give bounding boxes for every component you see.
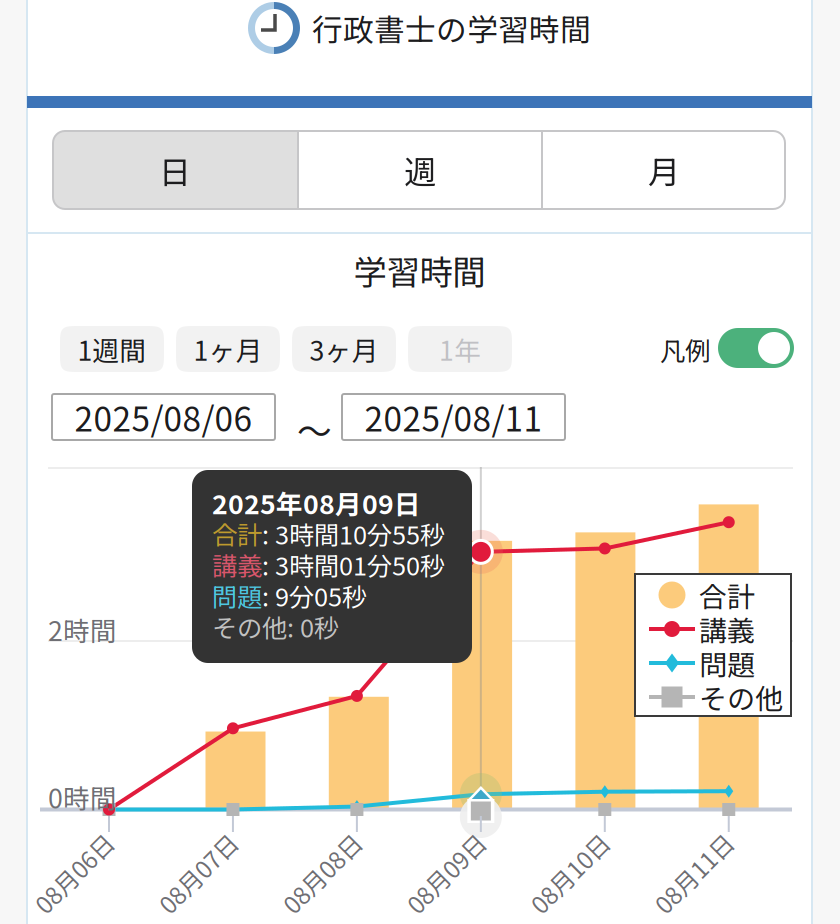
button[interactable]: 1年: [408, 326, 512, 372]
staticText: その他: 0秒: [212, 608, 339, 645]
staticText: 08月09日: [396, 856, 496, 890]
button[interactable]: 凡例の表示切り替え: [718, 328, 794, 368]
staticText: : 9分05秒: [262, 577, 367, 614]
staticText: 合計: [212, 515, 262, 552]
staticText: 行政書士の学習時間: [312, 6, 591, 50]
staticText: 学習時間: [353, 246, 485, 294]
staticText: 2025/08/11: [364, 393, 542, 441]
staticText: 〜: [297, 404, 332, 454]
staticText: 1年: [439, 330, 481, 368]
staticText: その他: [699, 677, 783, 717]
staticText: 合計: [699, 575, 755, 615]
button[interactable]: 1週間: [60, 326, 164, 372]
button[interactable]: 日: [53, 131, 297, 209]
staticText: 08月10日: [520, 856, 620, 890]
button[interactable]: 月: [543, 131, 785, 209]
staticText: : 3時間10分55秒: [262, 515, 445, 552]
staticText: 講義: [212, 546, 262, 583]
staticText: 2時間: [48, 610, 117, 649]
staticText: 08月08日: [272, 856, 372, 890]
staticText: 08月06日: [24, 856, 124, 890]
staticText: 問題: [699, 643, 755, 683]
staticText: 講義: [699, 609, 755, 649]
button[interactable]: 1ヶ月: [176, 326, 280, 372]
staticText: 問題: [212, 577, 262, 614]
button[interactable]: 週: [299, 131, 541, 209]
staticText: 日: [159, 147, 191, 193]
button[interactable]: 2025/08/06: [52, 394, 275, 440]
staticText: 1ヶ月: [193, 330, 262, 368]
staticText: 凡例: [660, 331, 710, 368]
staticText: 0時間: [48, 777, 117, 816]
staticText: 08月07日: [148, 856, 248, 890]
button[interactable]: 2025/08/11: [342, 394, 565, 440]
staticText: : 3時間01分50秒: [262, 546, 445, 583]
staticText: 週: [404, 147, 436, 193]
staticText: 3ヶ月: [309, 330, 378, 368]
staticText: 2025年08月09日: [212, 483, 421, 522]
staticText: 月: [648, 147, 680, 193]
button[interactable]: 3ヶ月: [292, 326, 396, 372]
staticText: 2025/08/06: [74, 393, 252, 441]
staticText: 1週間: [77, 330, 146, 368]
staticText: 08月11日: [644, 856, 744, 890]
